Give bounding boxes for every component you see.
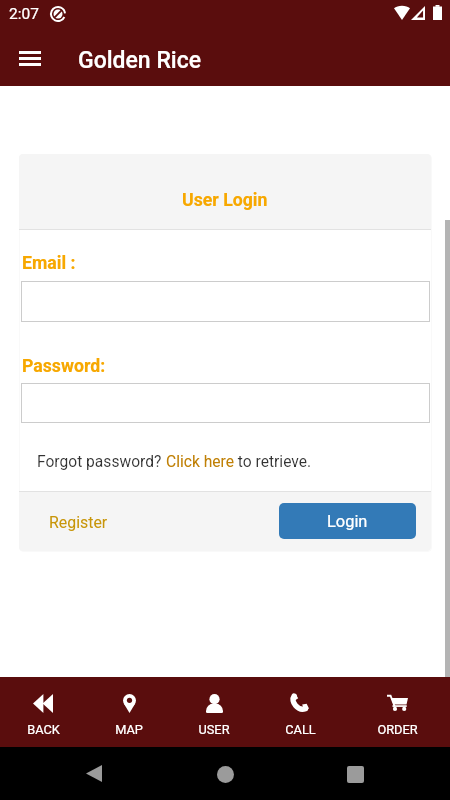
staticText: MAP [115, 722, 143, 737]
staticText: CALL [285, 722, 316, 737]
button[interactable]: Password input field [21, 383, 430, 423]
button[interactable]: Open navigation menu [4, 33, 56, 85]
staticText: Forgot password? [37, 453, 166, 471]
button[interactable]: CALL [257, 677, 343, 747]
other: Do not disturb [50, 6, 66, 22]
button[interactable]: Email input field [21, 281, 430, 322]
button[interactable]: MAP [86, 677, 172, 747]
staticText: User Login [182, 190, 268, 211]
button[interactable]: BACK [0, 677, 86, 747]
staticText: BACK [27, 722, 60, 737]
staticText: Register [49, 513, 108, 532]
staticText: to retrieve. [234, 453, 312, 471]
button[interactable]: USER [171, 677, 257, 747]
staticText: Login [327, 512, 368, 531]
staticText: 2:07 [9, 5, 39, 23]
staticText: Email : [22, 253, 76, 274]
button[interactable]: Login [279, 503, 416, 539]
staticText: USER [198, 722, 230, 737]
button[interactable]: Register [49, 513, 108, 532]
staticText: Password: [22, 356, 106, 377]
button[interactable]: Back [70, 749, 118, 797]
button[interactable]: Recent apps [331, 750, 379, 798]
button[interactable]: ORDER [347, 677, 447, 747]
button[interactable]: Click here [166, 453, 234, 471]
staticText: Golden Rice [78, 47, 202, 74]
staticText: ORDER [377, 722, 418, 737]
button[interactable]: Home [201, 750, 249, 798]
